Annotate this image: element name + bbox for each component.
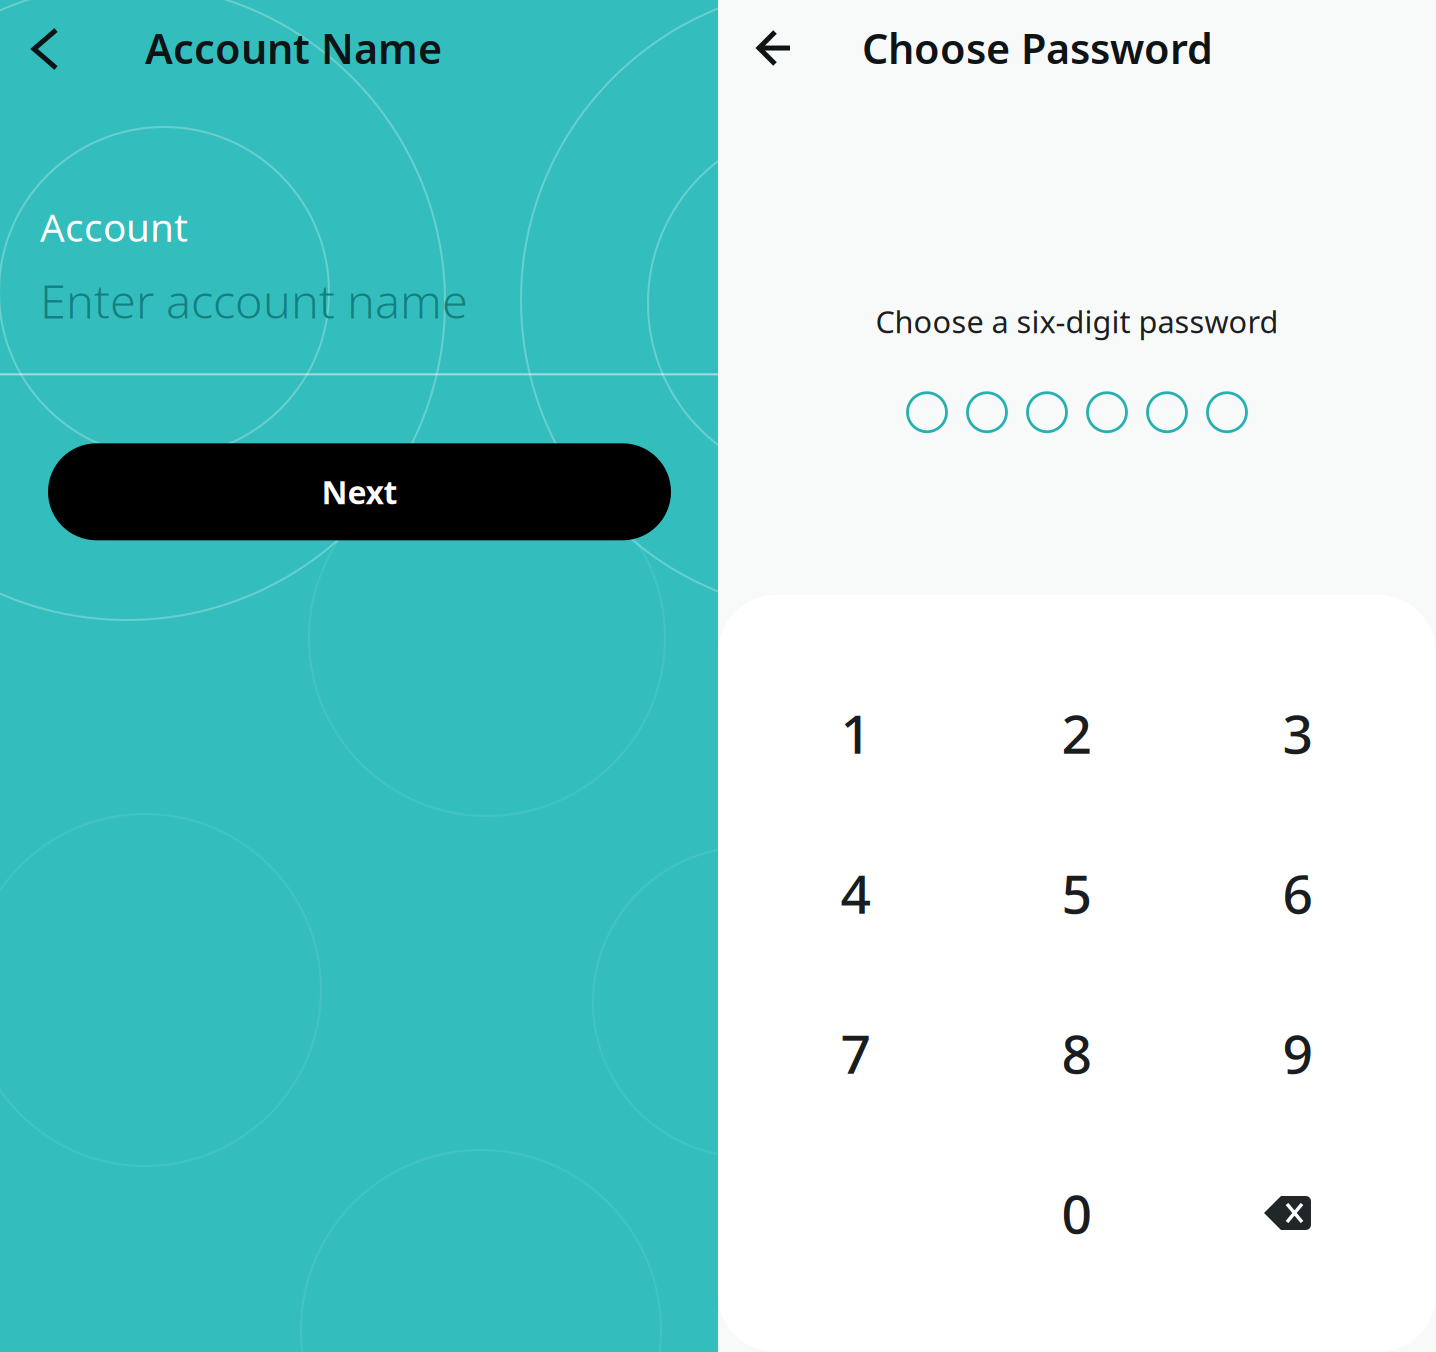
button[interactable]: 9 <box>1187 973 1408 1133</box>
button[interactable]: Delete <box>1187 1133 1408 1293</box>
staticText: 2 <box>1061 698 1092 768</box>
button[interactable]: Back <box>16 0 74 96</box>
button[interactable]: 3 <box>1187 653 1408 813</box>
button[interactable]: 2 <box>966 653 1187 813</box>
staticText: 8 <box>1061 1018 1092 1088</box>
button[interactable]: 7 <box>745 973 966 1133</box>
staticText: 3 <box>1282 698 1313 768</box>
staticText: 9 <box>1282 1018 1313 1088</box>
button[interactable]: 4 <box>745 813 966 973</box>
staticText: 4 <box>840 858 871 928</box>
button[interactable]: 1 <box>745 653 966 813</box>
staticText: 1 <box>840 698 871 768</box>
button[interactable]: 6 <box>1187 813 1408 973</box>
staticText: Choose a six-digit password <box>875 301 1278 342</box>
staticText: 0 <box>1061 1178 1092 1248</box>
staticText: Enter account name <box>40 269 468 331</box>
staticText: Account <box>40 201 188 252</box>
button[interactable]: 0 <box>966 1133 1187 1293</box>
staticText: 5 <box>1061 858 1092 928</box>
button[interactable]: 5 <box>966 813 1187 973</box>
button[interactable]: 8 <box>966 973 1187 1133</box>
button[interactable]: Next <box>48 443 671 540</box>
staticText: Next <box>321 471 397 513</box>
staticText: 7 <box>840 1018 871 1088</box>
staticText: 6 <box>1282 858 1313 928</box>
staticText: Choose Password <box>862 21 1213 75</box>
staticText: Account Name <box>145 21 442 75</box>
button[interactable]: Back <box>746 0 803 96</box>
